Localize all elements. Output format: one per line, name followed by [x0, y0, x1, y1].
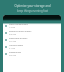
staticText: keep things running fast — [17, 9, 48, 13]
staticText: Duplicate photos — [9, 37, 28, 40]
staticText: Optimize your storage and — [14, 4, 51, 8]
button[interactable]: Clear cached files — [3, 22, 61, 29]
button[interactable]: Duplicate photos — [3, 36, 61, 43]
staticText: Unused apps — [9, 44, 24, 47]
button[interactable]: Remove large videos — [3, 29, 61, 36]
staticText: Downloads — [9, 51, 22, 54]
staticText: 2.1 GB — [9, 47, 16, 50]
button[interactable]: Unused apps — [3, 43, 61, 50]
staticText: 1.2 GB — [9, 26, 16, 29]
staticText: 512 MB — [9, 40, 17, 43]
staticText: 320 MB — [9, 54, 17, 57]
staticText: 840 MB — [9, 33, 17, 36]
staticText: Remove large videos — [9, 30, 32, 33]
staticText: Clear cached files — [9, 23, 28, 26]
button[interactable]: Downloads — [3, 50, 61, 57]
